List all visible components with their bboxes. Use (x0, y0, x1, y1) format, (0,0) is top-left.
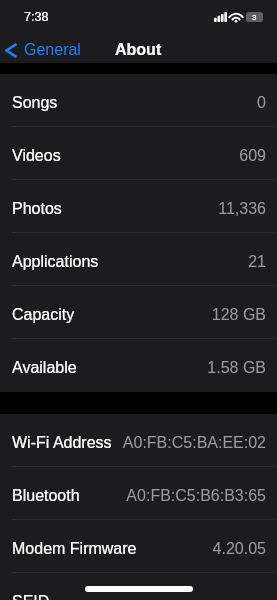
staticText: About (115, 41, 162, 59)
button[interactable]: Back to General (0, 36, 89, 64)
staticText: General (24, 41, 81, 59)
staticText: 609 (239, 147, 266, 165)
button[interactable]: Capacity (0, 286, 277, 339)
staticText: 11,336 (218, 200, 266, 218)
button[interactable]: Bluetooth (0, 467, 277, 520)
staticText: Wi-Fi Address (12, 434, 112, 452)
staticText: 0 (257, 94, 266, 112)
staticText: 4.20.05 (212, 540, 266, 558)
staticText: SEID (12, 593, 50, 600)
button[interactable]: Available (0, 339, 277, 392)
staticText: Capacity (12, 306, 75, 324)
staticText: 7:38 (24, 10, 49, 24)
other: Back to General (5, 42, 17, 59)
staticText: A0:FB:C5:BA:EE:02 (122, 434, 266, 452)
button[interactable]: Songs (0, 74, 277, 127)
staticText: Videos (12, 147, 61, 165)
button[interactable]: Videos (0, 127, 277, 180)
staticText: A0:FB:C5:B6:B3:65 (126, 487, 266, 505)
staticText: 1.58 GB (207, 359, 266, 377)
staticText: Bluetooth (12, 487, 80, 505)
staticText: 21 (248, 253, 266, 271)
staticText: Available (12, 359, 77, 377)
button[interactable]: Photos (0, 180, 277, 233)
staticText: Applications (12, 253, 99, 271)
staticText: 3 (252, 13, 257, 22)
staticText: Songs (12, 94, 58, 112)
button[interactable]: SEID (0, 573, 277, 600)
staticText: 128 GB (211, 306, 266, 324)
button[interactable]: Wi-Fi Address (0, 414, 277, 467)
button[interactable]: Modem Firmware (0, 520, 277, 573)
staticText: Photos (12, 200, 62, 218)
staticText: Modem Firmware (12, 540, 137, 558)
button[interactable]: Applications (0, 233, 277, 286)
